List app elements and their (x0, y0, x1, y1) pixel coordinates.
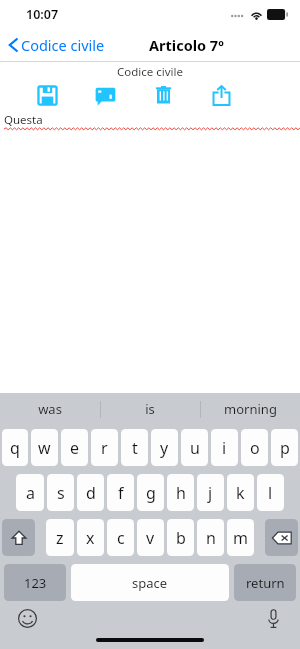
button[interactable]: d (77, 474, 104, 511)
staticText: was (38, 400, 62, 418)
button[interactable]: i (211, 429, 238, 466)
button[interactable]: w (31, 429, 58, 466)
staticText: Articolo 7º (149, 35, 224, 55)
button[interactable]: j (197, 474, 224, 511)
button[interactable]: g (137, 474, 164, 511)
staticText: b (176, 527, 186, 549)
staticText: n (206, 527, 216, 549)
staticText: s (57, 482, 65, 504)
button[interactable]: v (137, 519, 164, 556)
button[interactable]: t (121, 429, 148, 466)
button[interactable]: z (46, 519, 74, 556)
staticText: Questa (4, 112, 43, 128)
button[interactable]: m (227, 519, 254, 556)
button[interactable]: q (2, 429, 28, 466)
staticText: z (56, 527, 64, 549)
staticText: u (190, 437, 200, 459)
staticText: a (26, 482, 35, 504)
staticText: f (118, 482, 124, 504)
staticText: o (250, 437, 260, 459)
button[interactable]: s (47, 474, 74, 511)
button[interactable]: p (271, 429, 298, 466)
staticText: m (233, 527, 248, 549)
button[interactable]: k (227, 474, 254, 511)
button[interactable]: Emoji (14, 605, 40, 631)
staticText: c (117, 527, 125, 549)
staticText: j (208, 482, 213, 504)
staticText: 123 (24, 574, 47, 592)
staticText: q (10, 437, 20, 459)
button[interactable]: return (234, 564, 296, 601)
button[interactable]: space (71, 564, 229, 601)
button[interactable]: r (91, 429, 118, 466)
staticText: g (146, 482, 156, 504)
staticText: t (132, 437, 138, 459)
button[interactable]: e (61, 429, 88, 466)
button[interactable]: a (16, 474, 44, 511)
button[interactable]: f (107, 474, 134, 511)
button[interactable]: o (241, 429, 268, 466)
button[interactable]: Dictation (260, 605, 286, 631)
button[interactable]: Delete (148, 80, 178, 110)
staticText: Codice civile (117, 64, 184, 80)
staticText: x (86, 527, 95, 549)
button[interactable]: y (151, 429, 178, 466)
staticText: space (132, 574, 168, 592)
staticText: return (246, 574, 285, 592)
staticText: y (160, 437, 169, 459)
staticText: morning (224, 400, 277, 418)
button[interactable]: Shift (2, 519, 35, 556)
button[interactable]: Codice civile (0, 31, 111, 59)
button[interactable]: Backspace (265, 519, 298, 556)
staticText: l (268, 482, 273, 504)
button[interactable]: was (0, 400, 100, 418)
button[interactable]: u (181, 429, 208, 466)
button[interactable]: is (100, 400, 200, 418)
button[interactable]: c (107, 519, 134, 556)
staticText: 10:07 (26, 6, 59, 23)
staticText: i (222, 437, 227, 459)
button[interactable]: h (167, 474, 194, 511)
staticText: is (145, 400, 155, 418)
staticText: v (146, 527, 155, 549)
staticText: r (101, 437, 108, 459)
staticText: d (86, 482, 96, 504)
staticText: p (280, 437, 290, 459)
button[interactable]: 123 (4, 564, 66, 601)
button[interactable]: Comment (90, 80, 120, 110)
button[interactable]: Share (206, 80, 236, 110)
staticText: e (70, 437, 80, 459)
staticText: h (176, 482, 186, 504)
staticText: k (236, 482, 245, 504)
button[interactable]: morning (200, 400, 300, 418)
staticText: Codice civile (21, 35, 105, 55)
button[interactable]: x (77, 519, 104, 556)
button[interactable]: l (257, 474, 284, 511)
button[interactable]: n (197, 519, 224, 556)
button[interactable]: Save (32, 80, 62, 110)
button[interactable]: b (167, 519, 194, 556)
staticText: w (38, 437, 51, 459)
